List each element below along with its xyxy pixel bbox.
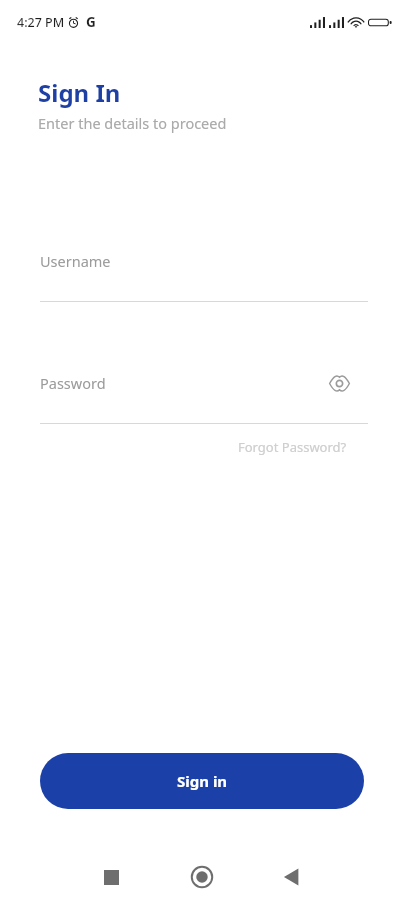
staticText: Enter the details to proceed bbox=[38, 113, 227, 133]
button[interactable]: Back bbox=[273, 859, 309, 895]
staticText: Username bbox=[40, 251, 111, 271]
staticText: Sign In bbox=[38, 76, 121, 109]
staticText: G bbox=[86, 13, 96, 31]
button[interactable]: Recent apps bbox=[93, 859, 129, 895]
staticText: 4:27 PM bbox=[17, 14, 65, 31]
button[interactable]: Sign in bbox=[40, 753, 364, 809]
button[interactable]: Show password bbox=[324, 368, 354, 398]
button[interactable]: Home bbox=[184, 859, 220, 895]
staticText: Forgot Password? bbox=[238, 438, 347, 456]
button[interactable]: Forgot Password? bbox=[236, 436, 349, 458]
staticText: Sign in bbox=[177, 771, 228, 791]
staticText: Password bbox=[40, 373, 106, 393]
